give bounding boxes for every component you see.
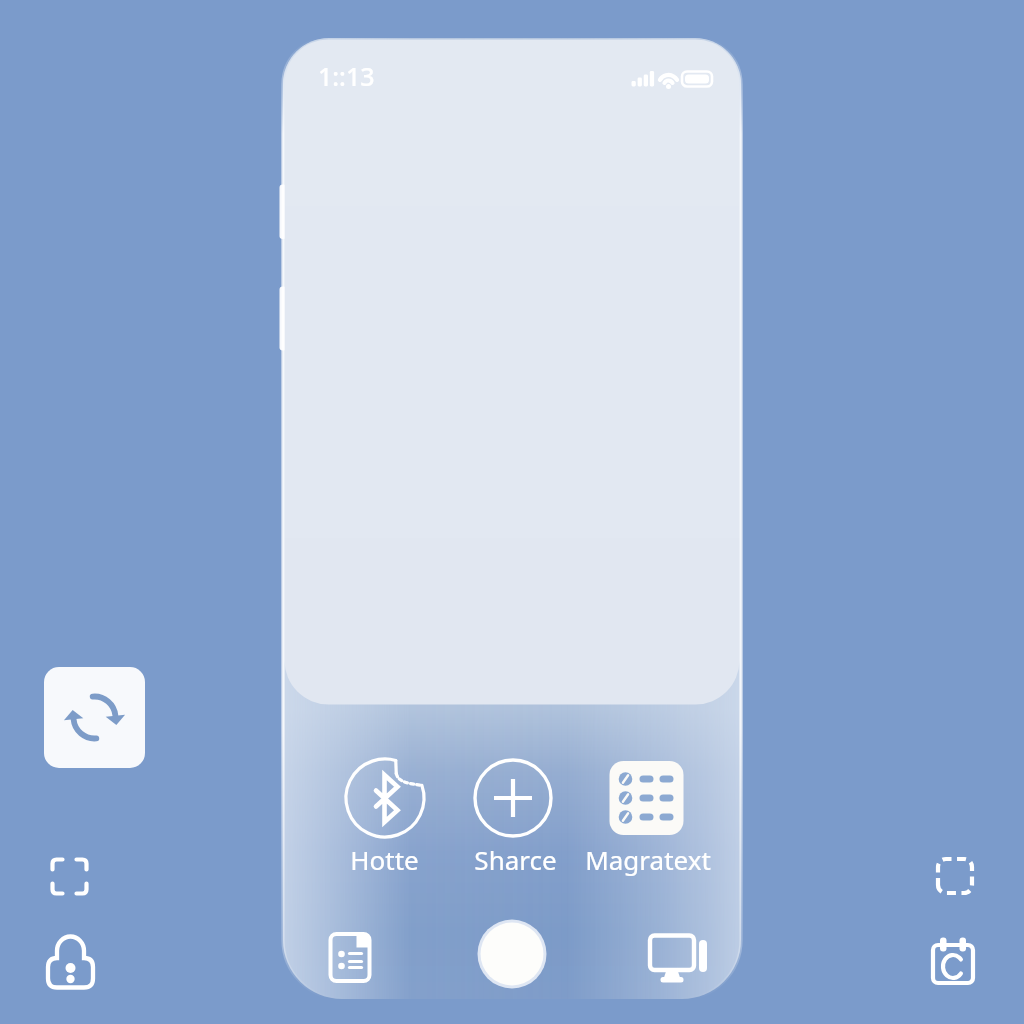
button[interactable]: Documents — [325, 928, 377, 986]
button[interactable]: Hotte — [314, 758, 455, 877]
button[interactable]: Magratext — [572, 758, 724, 877]
button[interactable]: Home — [477, 919, 547, 989]
staticText: Magratext — [585, 842, 711, 877]
button[interactable]: Calendar — [928, 933, 978, 989]
staticText: 1::13 — [318, 59, 375, 93]
staticText: Sharce — [474, 842, 557, 877]
button[interactable]: Crop — [930, 852, 980, 900]
button[interactable]: Display — [645, 928, 707, 984]
button[interactable]: Lock — [43, 932, 98, 992]
button[interactable]: Scan — [45, 852, 95, 900]
button[interactable]: Sync — [44, 667, 145, 768]
staticText: Hotte — [350, 842, 419, 877]
button[interactable]: Sharce — [445, 758, 586, 877]
